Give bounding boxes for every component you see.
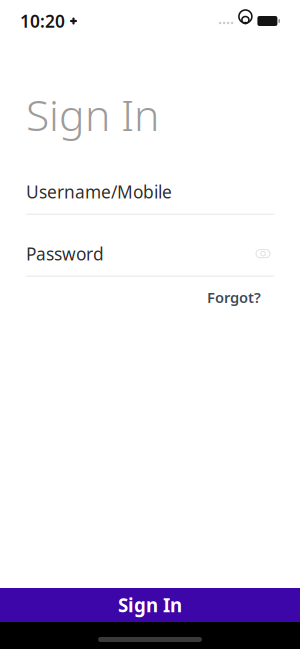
staticText: Forgot? (207, 288, 261, 307)
staticText: 10:20 (20, 9, 65, 32)
staticText: Sign In (26, 86, 159, 143)
staticText: Password (26, 242, 104, 265)
button[interactable]: Show password (252, 245, 274, 263)
staticText: Sign In (118, 593, 182, 617)
button[interactable]: Forgot? (205, 284, 263, 311)
staticText: Username/Mobile (26, 180, 172, 203)
button[interactable]: Sign In (0, 588, 300, 622)
